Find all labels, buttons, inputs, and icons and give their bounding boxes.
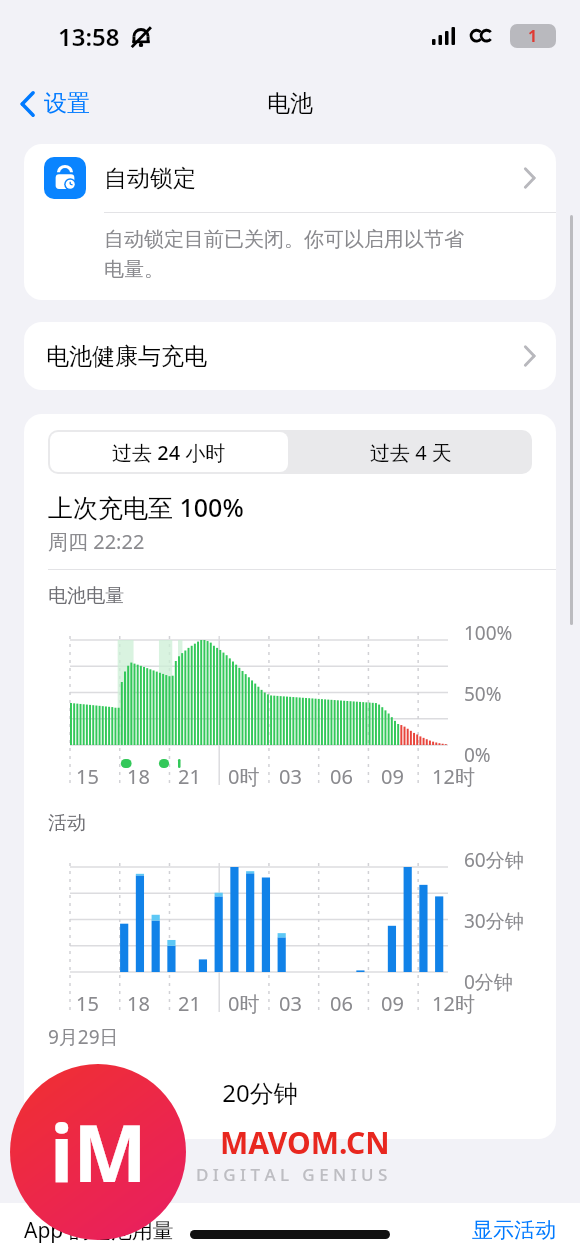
staticText: 上次充电至 100% [48,490,244,524]
staticText: 过去 4 天 [370,439,452,466]
staticText: 13:58 [58,20,120,53]
staticText: 过去 24 小时 [112,439,226,466]
staticText: 21 [178,763,201,790]
staticText: 电池 [267,89,313,118]
staticText: 50% [464,681,502,707]
staticText: 0时 [228,990,260,1017]
button[interactable]: 电池健康与充电 [24,322,556,390]
staticText: D I G I T A L G E N I U S [196,1163,388,1186]
staticText: App 的电池用量 [24,1216,174,1245]
staticText: 设置 [44,89,90,118]
staticText: 15 [76,763,99,790]
staticText: 09 [381,763,404,790]
staticText: 电池健康与充电 [46,342,207,371]
staticText: 21 [178,990,201,1017]
button[interactable]: 设置 [14,83,96,124]
staticText: MAVOM.CN [220,1122,390,1163]
staticText: 09 [381,990,404,1017]
button[interactable]: 过去 4 天 [290,430,532,474]
staticText: 30分钟 [464,908,524,934]
staticText: 03 [279,763,302,790]
staticText: 18 [127,763,150,790]
staticText: 06 [330,990,353,1017]
staticText: 06 [330,763,353,790]
button[interactable]: 过去 24 小时 [48,430,290,474]
staticText: 活动 [48,811,86,835]
staticText: 自动锁定 [104,164,196,193]
staticText: iM [50,1099,147,1205]
staticText: 15 [76,990,99,1017]
staticText: 03 [279,990,302,1017]
staticText: 12时 [432,990,475,1017]
staticText: 电池电量 [48,584,124,608]
staticText: 100% [464,620,513,646]
button[interactable]: 自动锁定 [24,144,556,212]
staticText: 60分钟 [464,847,524,873]
staticText: 周四 22:22 [48,528,145,555]
staticText: 0时 [228,763,260,790]
staticText: 18 [127,990,150,1017]
staticText: 12时 [432,763,475,790]
staticText: 0% [464,742,491,768]
staticText: 自动锁定目前已关闭。你可以启用以节省 电量。 [104,227,464,282]
staticText: 0分钟 [464,969,513,995]
staticText: 显示活动 [472,1217,556,1243]
staticText: 9月29日 [48,1024,119,1050]
button[interactable]: 显示活动 [472,1217,556,1243]
staticText: 1 [528,25,538,47]
staticText: 20分钟 [24,1076,496,1109]
